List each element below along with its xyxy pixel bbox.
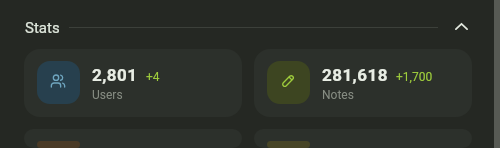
staticText: 281,618 [322,65,388,85]
button[interactable]: Collapse section [450,18,474,37]
staticText: Users [92,88,123,102]
button[interactable]: 2,801 [24,49,242,117]
staticText: +1,700 [396,70,433,84]
button[interactable] [254,129,472,148]
button[interactable] [24,129,242,148]
staticText: Stats [25,19,60,37]
staticText: Notes [322,88,354,102]
button[interactable]: 281,618 [254,49,472,117]
staticText: +4 [146,70,160,84]
staticText: 2,801 [92,65,138,85]
